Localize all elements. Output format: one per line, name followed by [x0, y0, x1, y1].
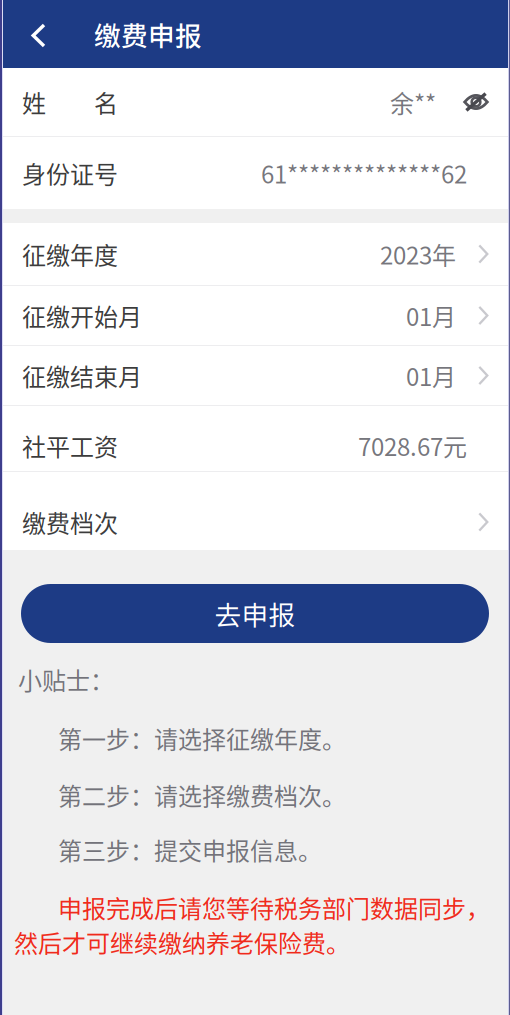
staticText: 缴费申报 — [94, 15, 202, 53]
staticText: 申报完成后请您等待税务部门数据同步， — [58, 890, 490, 925]
button[interactable]: 征缴结束月 — [0, 346, 510, 405]
staticText: 身份证号 — [22, 156, 118, 190]
staticText: 然后才可继续缴纳养老保险费。 — [14, 925, 350, 960]
staticText: 01月 — [406, 358, 456, 393]
staticText: 缴费档次 — [22, 505, 118, 539]
button[interactable]: 去申报 — [21, 584, 489, 643]
staticText: 余** — [390, 85, 436, 119]
button[interactable]: 征缴年度 — [0, 223, 510, 285]
staticText: 社平工资 — [22, 428, 118, 463]
staticText: 征缴开始月 — [22, 298, 142, 333]
staticText: 征缴年度 — [22, 237, 118, 271]
staticText: 小贴士： — [18, 662, 114, 697]
button[interactable]: 显示姓名 — [436, 92, 489, 112]
staticText: 去申报 — [214, 594, 295, 633]
staticText: 61**************62 — [261, 156, 467, 190]
staticText: 姓 名 — [22, 85, 118, 119]
button[interactable]: 征缴开始月 — [0, 286, 510, 345]
staticText: 01月 — [406, 298, 456, 333]
button[interactable]: Back — [0, 0, 94, 68]
staticText: 7028.67元 — [358, 428, 467, 463]
staticText: 征缴结束月 — [22, 358, 142, 393]
button[interactable]: 缴费档次 — [0, 472, 510, 550]
staticText: 第三步：提交申报信息。 — [58, 832, 322, 867]
staticText: 第一步：请选择征缴年度。 — [58, 721, 346, 756]
staticText: 第二步：请选择缴费档次。 — [58, 777, 346, 812]
staticText: 2023年 — [380, 237, 456, 271]
